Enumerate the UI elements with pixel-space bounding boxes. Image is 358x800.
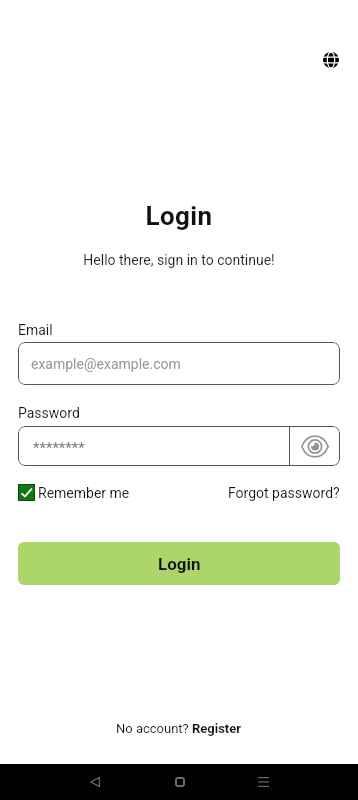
button[interactable]: Change language xyxy=(315,44,347,76)
button[interactable]: Forgot password? xyxy=(228,485,340,501)
button[interactable]: Back xyxy=(78,765,111,798)
staticText: Login xyxy=(158,554,201,574)
button[interactable]: Login xyxy=(18,542,340,585)
staticText: ******** xyxy=(33,439,85,457)
button[interactable]: Home xyxy=(163,765,196,798)
staticText: Password xyxy=(18,405,80,421)
staticText: No account? Register xyxy=(116,721,242,736)
staticText: example@example.com xyxy=(31,356,181,372)
staticText: Hello there, sign in to continue! xyxy=(0,252,358,268)
button[interactable]: example@example.com xyxy=(18,342,340,385)
button[interactable]: No account? Register xyxy=(116,721,242,736)
staticText: Login xyxy=(0,201,358,231)
button[interactable]: Remember me xyxy=(18,484,130,501)
staticText: Remember me xyxy=(38,485,130,501)
staticText: Email xyxy=(18,322,53,338)
button[interactable]: Recent apps xyxy=(247,765,280,798)
button[interactable]: Show password xyxy=(289,426,340,466)
